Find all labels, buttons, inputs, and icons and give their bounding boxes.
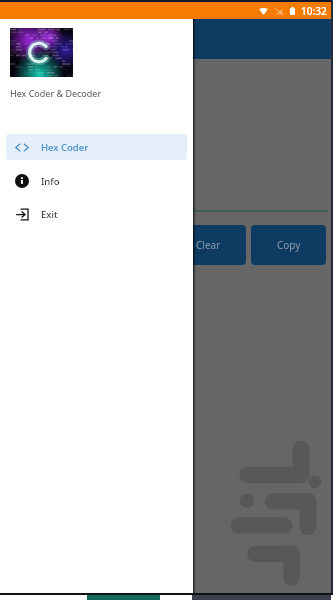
staticText: 10:32 — [301, 4, 327, 18]
staticText: Copy — [277, 238, 301, 252]
staticText: Hex Coder — [41, 141, 89, 154]
staticText: Exit — [41, 208, 58, 221]
staticText: Hex Coder & Decoder — [10, 87, 102, 99]
staticText: Clear — [196, 238, 221, 252]
button[interactable]: Hex Coder — [6, 134, 187, 160]
button[interactable]: Copy — [251, 225, 326, 265]
button[interactable]: Clear — [171, 225, 246, 265]
button[interactable]: Exit — [6, 201, 187, 227]
staticText: Info — [41, 175, 60, 188]
button[interactable]: Info — [6, 168, 187, 194]
